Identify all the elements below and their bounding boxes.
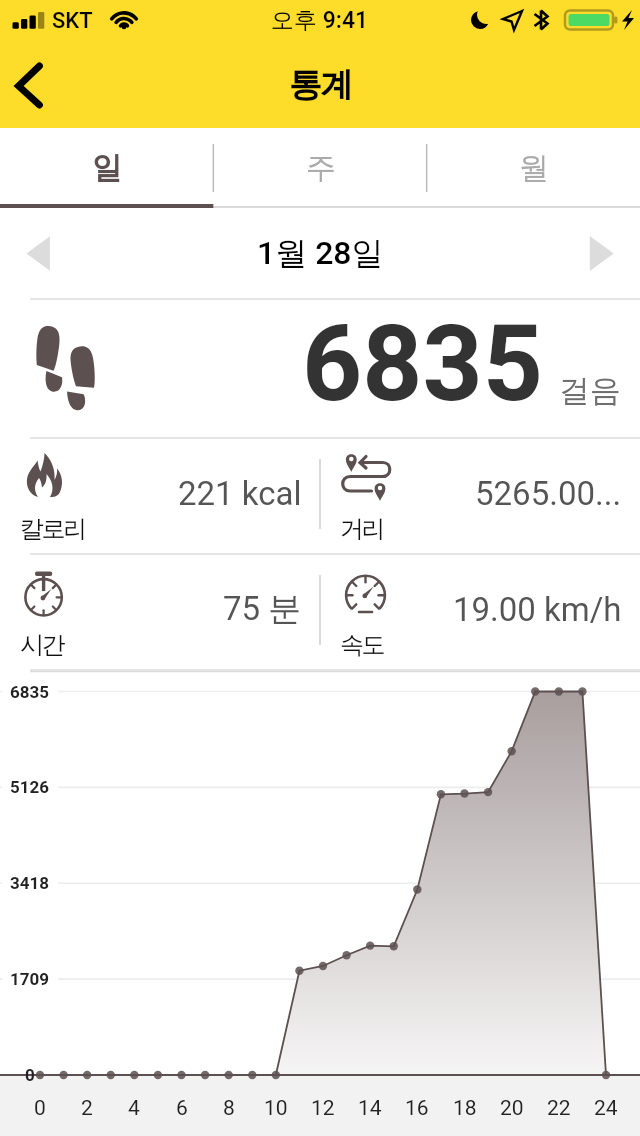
staticText: 6835 bbox=[302, 303, 543, 426]
staticText: 속도 bbox=[340, 630, 384, 660]
staticText: 24 bbox=[594, 1096, 618, 1121]
button[interactable]: Next day bbox=[550, 208, 640, 300]
staticText: 14 bbox=[358, 1096, 382, 1121]
button[interactable]: 주 bbox=[214, 128, 427, 208]
staticText: 오후 9:41 bbox=[271, 6, 369, 35]
staticText: 75 분 bbox=[223, 588, 302, 630]
button[interactable]: Previous day bbox=[0, 208, 90, 300]
staticText: 5126 bbox=[10, 777, 50, 797]
staticText: 통계 bbox=[289, 64, 352, 106]
staticText: 월 bbox=[519, 149, 549, 187]
staticText: 칼로리 bbox=[20, 514, 85, 544]
staticText: 3418 bbox=[10, 873, 50, 893]
staticText: 22 bbox=[547, 1096, 571, 1121]
button[interactable]: 6835 bbox=[0, 300, 640, 439]
button[interactable]: 월 bbox=[427, 128, 640, 208]
staticText: 5265.00... bbox=[475, 474, 622, 513]
staticText: 6 bbox=[176, 1096, 188, 1121]
button[interactable]: 속도 bbox=[320, 555, 640, 671]
staticText: 18 bbox=[453, 1096, 477, 1121]
staticText: 221 kcal bbox=[178, 474, 302, 513]
staticText: 시간 bbox=[20, 630, 64, 660]
staticText: 8 bbox=[223, 1096, 235, 1121]
staticText: 걸음 bbox=[559, 371, 621, 410]
staticText: 1월 28일 bbox=[257, 233, 384, 273]
button[interactable]: 일 bbox=[0, 128, 214, 208]
staticText: 거리 bbox=[340, 514, 384, 544]
button[interactable]: 거리 bbox=[320, 439, 640, 555]
staticText: 2 bbox=[81, 1096, 93, 1121]
staticText: 1709 bbox=[10, 969, 50, 989]
staticText: 0 bbox=[25, 1065, 35, 1085]
staticText: 19.00 km/h bbox=[453, 590, 622, 629]
button[interactable]: Back bbox=[0, 44, 64, 128]
staticText: SKT bbox=[52, 8, 93, 34]
staticText: 16 bbox=[405, 1096, 429, 1121]
button[interactable]: 칼로리 bbox=[0, 439, 320, 555]
staticText: 일 bbox=[92, 149, 122, 187]
staticText: 주 bbox=[306, 149, 336, 187]
staticText: 20 bbox=[500, 1096, 524, 1121]
staticText: 4 bbox=[128, 1096, 140, 1121]
button[interactable]: 시간 bbox=[0, 555, 320, 671]
staticText: 12 bbox=[311, 1096, 335, 1121]
staticText: 0 bbox=[34, 1096, 46, 1121]
staticText: 6835 bbox=[10, 682, 50, 702]
staticText: 10 bbox=[264, 1096, 288, 1121]
